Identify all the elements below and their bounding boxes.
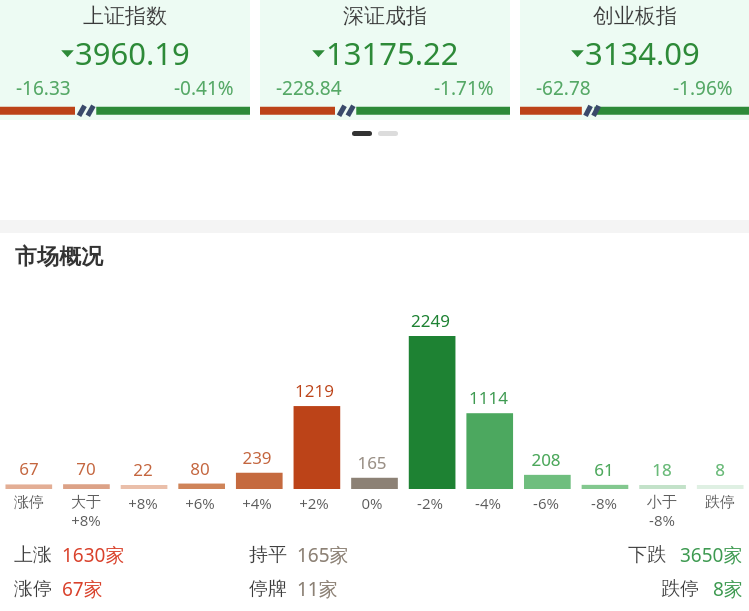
staticText: 22: [133, 458, 153, 481]
staticText: 61: [594, 458, 614, 481]
staticText: 8家: [713, 576, 743, 602]
staticText: 67: [19, 457, 39, 480]
staticText: 208: [531, 448, 561, 471]
staticText: 1219: [295, 379, 334, 402]
staticText: 涨停: [14, 577, 52, 601]
staticText: 1114: [469, 386, 508, 409]
button[interactable]: 上涨: [0, 538, 749, 572]
staticText: -8%: [591, 493, 617, 513]
staticText: 1630家: [62, 542, 125, 568]
staticText: 创业板指: [593, 3, 677, 29]
staticText: -62.78: [536, 75, 591, 101]
staticText: 0%: [361, 493, 383, 513]
staticText: 3134.09: [585, 32, 700, 74]
staticText: +6%: [185, 493, 215, 513]
staticText: 8: [715, 458, 725, 481]
staticText: -0.41%: [174, 75, 234, 101]
staticText: +8%: [128, 493, 158, 513]
staticText: -6%: [533, 493, 559, 513]
button[interactable]: [352, 131, 372, 136]
button[interactable]: 市场概况: [0, 233, 749, 280]
staticText: 大于 +8%: [71, 493, 101, 531]
staticText: 跌停: [705, 493, 735, 512]
staticText: 2249: [411, 309, 450, 332]
staticText: 下跌: [628, 543, 666, 567]
staticText: +2%: [299, 493, 329, 513]
staticText: 停牌: [249, 577, 287, 601]
staticText: -228.84: [276, 75, 342, 101]
staticText: 上证指数: [83, 3, 167, 29]
staticText: 80: [190, 457, 210, 480]
staticText: -1.96%: [673, 75, 733, 101]
staticText: -4%: [475, 493, 501, 513]
staticText: 70: [76, 457, 96, 480]
staticText: 67家: [62, 576, 103, 602]
staticText: 市场概况: [15, 243, 103, 271]
staticText: 165: [357, 451, 387, 474]
staticText: 239: [242, 446, 272, 469]
staticText: 165家: [297, 542, 349, 568]
staticText: +4%: [242, 493, 272, 513]
staticText: 持平: [249, 543, 287, 567]
staticText: 3960.19: [75, 32, 190, 74]
button[interactable]: 涨停: [0, 572, 749, 606]
staticText: -1.71%: [434, 75, 494, 101]
staticText: 深证成指: [343, 3, 427, 29]
staticText: -16.33: [16, 75, 71, 101]
staticText: 11家: [297, 576, 338, 602]
staticText: 18: [652, 458, 672, 481]
button[interactable]: 深证成指: [260, 0, 510, 120]
staticText: 3650家: [680, 542, 743, 568]
staticText: 上涨: [14, 543, 52, 567]
button[interactable]: 创业板指: [520, 0, 749, 120]
button[interactable]: 上证指数: [0, 0, 250, 120]
button[interactable]: [378, 131, 398, 136]
staticText: -2%: [417, 493, 443, 513]
staticText: 跌停: [661, 577, 699, 601]
staticText: 13175.22: [326, 32, 459, 74]
staticText: 小于 -8%: [647, 493, 677, 531]
staticText: 涨停: [14, 493, 44, 512]
